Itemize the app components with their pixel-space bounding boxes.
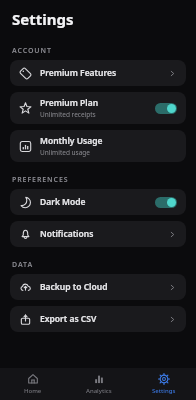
button[interactable]: Notifications [10, 221, 186, 247]
button[interactable]: Toggle [155, 103, 177, 114]
staticText: Backup to Cloud [40, 281, 108, 293]
button[interactable]: Dark Mode [10, 189, 186, 215]
staticText: Unlimited usage [40, 148, 91, 157]
button[interactable]: Premium Plan [10, 92, 186, 124]
button[interactable]: Settings [131, 368, 196, 400]
staticText: Analytics [86, 387, 112, 395]
staticText: Settings [152, 387, 176, 395]
button[interactable]: Premium Features [10, 60, 186, 86]
button[interactable]: Home [0, 368, 66, 400]
staticText: Monthly Usage [40, 135, 103, 147]
button[interactable]: Monthly Usage [10, 130, 186, 162]
staticText: ACCOUNT [12, 46, 52, 56]
button[interactable]: Backup to Cloud [10, 274, 186, 300]
staticText: Premium Plan [40, 97, 99, 109]
staticText: Notifications [40, 228, 94, 240]
staticText: Export as CSV [40, 313, 97, 325]
staticText: DATA [12, 260, 33, 270]
staticText: Premium Features [40, 67, 117, 79]
button[interactable]: Toggle [155, 197, 177, 208]
staticText: Unlimited receipts [40, 110, 96, 119]
staticText: Home [24, 387, 42, 395]
staticText: Settings [12, 9, 74, 29]
staticText: Dark Mode [40, 196, 86, 208]
button[interactable]: Analytics [66, 368, 131, 400]
button[interactable]: Export as CSV [10, 306, 186, 332]
staticText: PREFERENCES [12, 175, 69, 185]
